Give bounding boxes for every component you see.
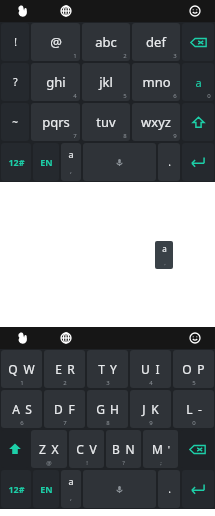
button[interactable]: E (44, 350, 85, 388)
button[interactable]: . (158, 470, 180, 508)
button[interactable]: A (1, 390, 42, 428)
staticText: , (70, 166, 72, 176)
staticText: 12# (8, 156, 25, 168)
button[interactable]: Q (1, 350, 42, 388)
staticText: 1 (20, 379, 24, 387)
button[interactable]: B (106, 430, 141, 468)
staticText: 3 (106, 379, 110, 387)
button[interactable]: Space (83, 143, 156, 181)
staticText: 0 (207, 92, 211, 100)
staticText: a (68, 475, 74, 487)
button[interactable]: Language (44, 0, 88, 22)
button[interactable]: 12# (1, 143, 31, 181)
button[interactable]: J (130, 390, 171, 428)
staticText: abc (95, 33, 117, 51)
button[interactable]: Emoji (175, 327, 215, 349)
staticText: @ (50, 33, 62, 51)
staticText: L (186, 401, 193, 417)
button[interactable]: Handwriting (0, 0, 44, 22)
staticText: ghi (46, 73, 66, 91)
button[interactable]: Language (44, 327, 88, 349)
button[interactable]: abc (82, 23, 130, 61)
staticText: V (89, 441, 97, 457)
button[interactable]: a (61, 143, 81, 181)
staticText: 7 (63, 419, 67, 427)
button[interactable]: Enter (182, 470, 214, 508)
button[interactable]: a (155, 241, 173, 269)
staticText: jkl (99, 73, 113, 91)
staticText: pqrs (42, 113, 70, 131)
staticText: 9 (149, 419, 153, 427)
button[interactable]: Space (83, 470, 156, 508)
staticText: 8 (123, 132, 127, 140)
button[interactable]: Shift (182, 103, 214, 141)
staticText: C (76, 441, 84, 457)
staticText: , (164, 259, 166, 267)
button[interactable]: tuv (82, 103, 130, 141)
button[interactable]: mno (132, 63, 180, 101)
staticText: F (68, 401, 75, 417)
button[interactable]: a (61, 470, 81, 508)
staticText: U (141, 361, 150, 377)
button[interactable]: Handwriting (0, 327, 44, 349)
button[interactable]: M (143, 430, 178, 468)
button[interactable]: L (173, 390, 214, 428)
button[interactable]: Z (31, 430, 67, 468)
staticText: . (168, 482, 171, 496)
button[interactable]: def (132, 23, 180, 61)
staticText: R (67, 361, 75, 377)
staticText: 5 (123, 92, 127, 100)
staticText: 6 (20, 419, 24, 427)
button[interactable]: pqrs (31, 103, 80, 141)
staticText: I (155, 361, 160, 377)
button[interactable]: Enter (182, 143, 214, 181)
staticText: W (23, 361, 35, 377)
button[interactable]: Backspace (180, 430, 214, 468)
button[interactable]: ? (1, 63, 29, 101)
button[interactable]: @ (31, 23, 80, 61)
button[interactable]: a (182, 63, 214, 101)
button[interactable]: . (158, 143, 180, 181)
staticText: EN (40, 156, 53, 168)
staticText: 0 (192, 419, 196, 427)
staticText: 4 (149, 379, 153, 387)
button[interactable]: Emoji (175, 0, 215, 22)
staticText: ~ (12, 115, 18, 129)
button[interactable]: C (69, 430, 104, 468)
button[interactable]: EN (33, 470, 59, 508)
staticText: , (70, 493, 72, 503)
button[interactable]: G (87, 390, 128, 428)
staticText: N (125, 441, 135, 457)
button[interactable]: Shift (1, 430, 29, 468)
button[interactable]: ghi (31, 63, 80, 101)
button[interactable]: Backspace (182, 23, 214, 61)
staticText: EN (40, 483, 53, 495)
staticText: def (146, 33, 166, 51)
staticText: 3 (173, 52, 177, 60)
staticText: Q (8, 361, 18, 377)
staticText: ; (160, 459, 162, 467)
staticText: wxyz (141, 113, 171, 131)
button[interactable]: EN (33, 143, 59, 181)
staticText: D (54, 401, 63, 417)
button[interactable]: O (173, 350, 214, 388)
staticText: M (152, 441, 163, 457)
button[interactable]: ! (1, 23, 29, 61)
staticText: 5 (192, 379, 196, 387)
staticText: O (182, 361, 192, 377)
button[interactable]: D (44, 390, 85, 428)
staticText: A (12, 401, 20, 417)
button[interactable]: T (87, 350, 128, 388)
staticText: ? (122, 459, 125, 467)
staticText: P (197, 361, 205, 377)
button[interactable]: U (130, 350, 171, 388)
button[interactable]: wxyz (132, 103, 180, 141)
staticText: mno (142, 73, 171, 91)
staticText: Y (110, 361, 117, 377)
button[interactable]: ~ (1, 103, 29, 141)
staticText: G (96, 401, 105, 417)
button[interactable]: jkl (82, 63, 130, 101)
button[interactable]: 12# (1, 470, 31, 508)
staticText: S (25, 401, 32, 417)
staticText: 4 (73, 92, 77, 100)
